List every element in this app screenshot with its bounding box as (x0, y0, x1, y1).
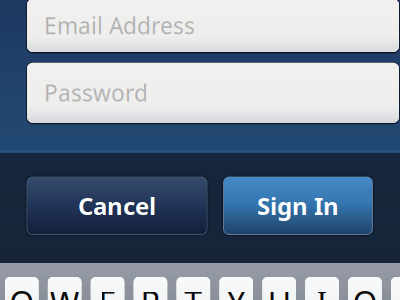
staticText: Email Address (44, 10, 195, 40)
staticText: Q (9, 281, 34, 300)
staticText: T (184, 281, 202, 300)
button[interactable]: T (177, 277, 210, 300)
staticText: Cancel (78, 190, 156, 222)
staticText: U (268, 281, 291, 300)
button[interactable]: Y (219, 277, 253, 300)
button[interactable]: Q (5, 277, 38, 300)
staticText: Sign In (257, 190, 339, 222)
staticText: R (140, 281, 160, 300)
button[interactable]: W (48, 277, 81, 300)
button[interactable]: R (134, 277, 167, 300)
button[interactable]: I (305, 277, 339, 300)
button[interactable]: O (348, 277, 382, 300)
button[interactable]: E (91, 277, 124, 300)
staticText: W (50, 281, 80, 300)
staticText: Password (44, 78, 148, 108)
staticText: O (352, 281, 377, 300)
staticText: E (98, 281, 116, 300)
staticText: I (317, 281, 328, 300)
button[interactable]: Sign In (222, 175, 374, 236)
button[interactable]: U (262, 277, 296, 300)
staticText: Y (227, 281, 245, 300)
button[interactable]: Cancel (25, 175, 208, 236)
button[interactable]: P (391, 277, 400, 300)
